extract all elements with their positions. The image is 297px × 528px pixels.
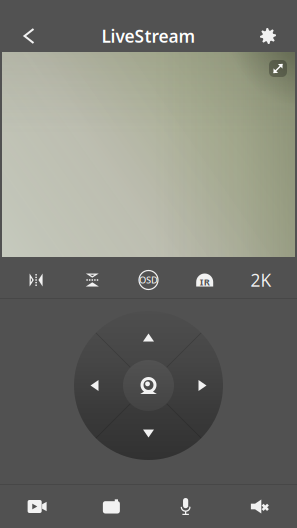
button[interactable]: Record video	[0, 485, 74, 528]
staticText: OSD	[139, 274, 158, 286]
button[interactable]: Back	[7, 20, 51, 52]
staticText: 2K	[250, 268, 271, 291]
button[interactable]: Settings	[246, 20, 290, 52]
button[interactable]: Mute speaker	[223, 485, 297, 528]
staticText: IR	[200, 276, 210, 288]
button[interactable]: Flip horizontally	[8, 262, 64, 298]
button[interactable]: Pan left	[77, 365, 111, 405]
staticText: LiveStream	[101, 24, 195, 47]
button[interactable]: Full screen	[269, 60, 287, 77]
button[interactable]: Home position	[123, 360, 174, 411]
button[interactable]: On-screen display	[120, 262, 177, 298]
button[interactable]: Talk	[148, 485, 223, 528]
button[interactable]: Resolution 2K	[233, 262, 289, 298]
button[interactable]: Pan right	[185, 365, 219, 405]
button[interactable]: Flip vertically	[64, 262, 120, 298]
button[interactable]: Infrared	[177, 262, 233, 298]
button[interactable]: Take snapshot	[74, 485, 148, 528]
button[interactable]: Tilt down	[128, 416, 168, 450]
button[interactable]: Tilt up	[128, 320, 168, 354]
